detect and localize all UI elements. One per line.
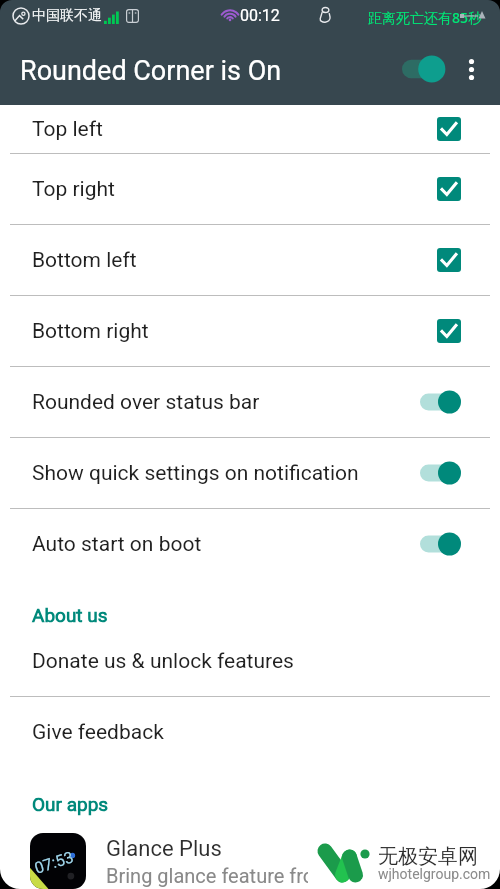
staticText: 中国联不通 (32, 7, 102, 25)
staticText: Bottom left (32, 248, 137, 273)
other: Checked (437, 319, 461, 343)
staticText: 无极安卓网 (378, 844, 478, 869)
staticText: Our apps (32, 793, 109, 815)
button[interactable]: Show quick settings on notification (0, 438, 500, 508)
button[interactable]: Top right (0, 154, 500, 224)
button[interactable]: Donate us & unlock features (0, 627, 500, 696)
staticText: 07:53 (32, 847, 76, 878)
button[interactable]: Bottom right (0, 296, 500, 366)
other: Checked (437, 248, 461, 272)
staticText: 00:12 (240, 6, 280, 25)
other: On (420, 390, 461, 414)
staticText: wjhotelgroup.com (378, 866, 491, 882)
button[interactable]: Rounded over status bar (0, 367, 500, 437)
button[interactable]: Give feedback (0, 697, 500, 768)
staticText: Top left (32, 117, 103, 142)
staticText: Bottom right (32, 319, 149, 344)
staticText: 距离死亡还有85秒 (368, 8, 483, 27)
staticText: Rounded over status bar (32, 390, 260, 415)
staticText: Bring glance feature fron. (106, 864, 331, 887)
staticText: Donate us & unlock features (32, 649, 294, 674)
staticText: Auto start on boot (32, 532, 202, 557)
other: Checked (437, 177, 461, 201)
other: On (420, 532, 461, 556)
button[interactable]: Top left (0, 105, 500, 153)
staticText: About us (32, 604, 108, 626)
button[interactable]: Bottom left (0, 225, 500, 295)
button[interactable]: Auto start on boot (0, 509, 500, 579)
other: Checked (437, 117, 461, 141)
staticText: Glance Plus (106, 836, 222, 862)
button[interactable]: More options (454, 45, 488, 93)
staticText: Top right (32, 177, 115, 202)
staticText: Rounded Corner is On (20, 55, 282, 87)
button[interactable]: 07:53 (0, 816, 500, 889)
button[interactable]: Enable rounded corner (398, 45, 454, 93)
staticText: Give feedback (32, 720, 164, 745)
other: On (420, 461, 461, 485)
staticText: Show quick settings on notification (32, 461, 359, 486)
